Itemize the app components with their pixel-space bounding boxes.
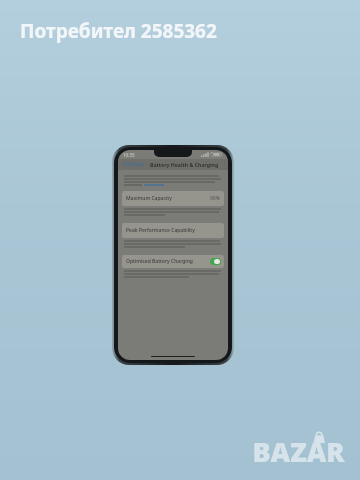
button[interactable]: Optimised Battery Charging <box>122 255 224 268</box>
staticText: Maximum Capacity <box>126 195 172 202</box>
button[interactable]: Peak Performance Capability <box>122 223 224 238</box>
staticText: Battery <box>127 161 145 168</box>
staticText: Peak Performance Capability <box>126 227 195 234</box>
button[interactable]: Optimised Battery Charging toggle <box>210 258 221 265</box>
staticText: 10:35 <box>123 152 135 158</box>
button[interactable]: Maximum Capacity <box>122 191 224 206</box>
staticText: 90% <box>210 195 220 202</box>
staticText: BAZAR <box>252 433 345 470</box>
button[interactable]: Battery <box>122 160 146 169</box>
staticText: Battery Health & Charging <box>150 161 219 168</box>
staticText: Optimised Battery Charging <box>126 258 193 265</box>
staticText: Потребител 2585362 <box>20 18 217 44</box>
